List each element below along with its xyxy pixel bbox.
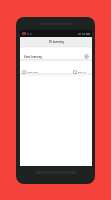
button[interactable]: Rate Us	[73, 70, 86, 74]
staticText: Rate Us	[78, 71, 86, 74]
staticText: Start Learning	[24, 55, 42, 58]
other: Settings	[84, 54, 89, 59]
button[interactable]: Start Learning	[20, 50, 92, 62]
staticText: More Apps	[27, 71, 38, 74]
button[interactable]: More Apps	[22, 70, 38, 74]
staticText: FX Learning	[49, 40, 64, 43]
